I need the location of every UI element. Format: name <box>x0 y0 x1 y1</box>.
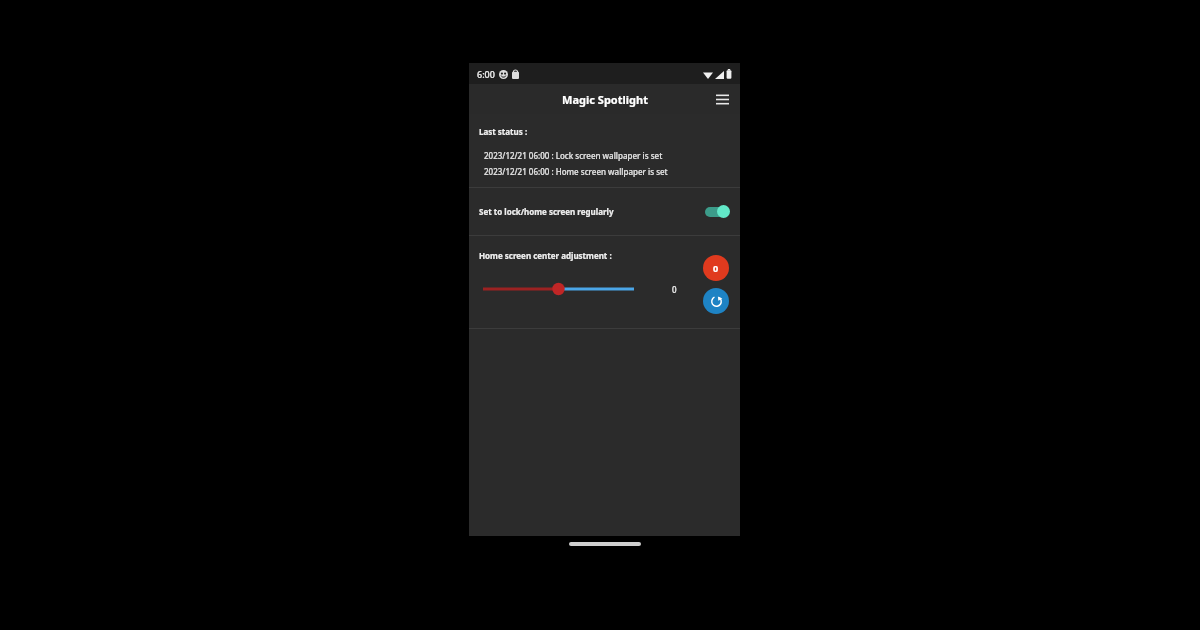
button[interactable]: Reset <box>703 288 729 314</box>
staticText: Last status : <box>479 126 528 137</box>
button[interactable] <box>479 280 644 298</box>
staticText: Set to lock/home screen regularly <box>479 206 614 217</box>
staticText: 2023/12/21 06:00 : Home screen wallpaper… <box>484 166 668 177</box>
button[interactable]: Menu <box>712 89 732 109</box>
staticText: 6:00 <box>477 68 495 80</box>
button[interactable]: Set to lock/home screen regularly <box>469 188 740 235</box>
staticText: Magic Spotlight <box>562 92 648 107</box>
staticText: 2023/12/21 06:00 : Lock screen wallpaper… <box>484 150 663 161</box>
staticText: 0 <box>672 284 677 295</box>
staticText: 0 <box>713 262 719 274</box>
button[interactable]: 0 <box>703 255 729 281</box>
staticText: Home screen center adjustment : <box>479 250 612 261</box>
